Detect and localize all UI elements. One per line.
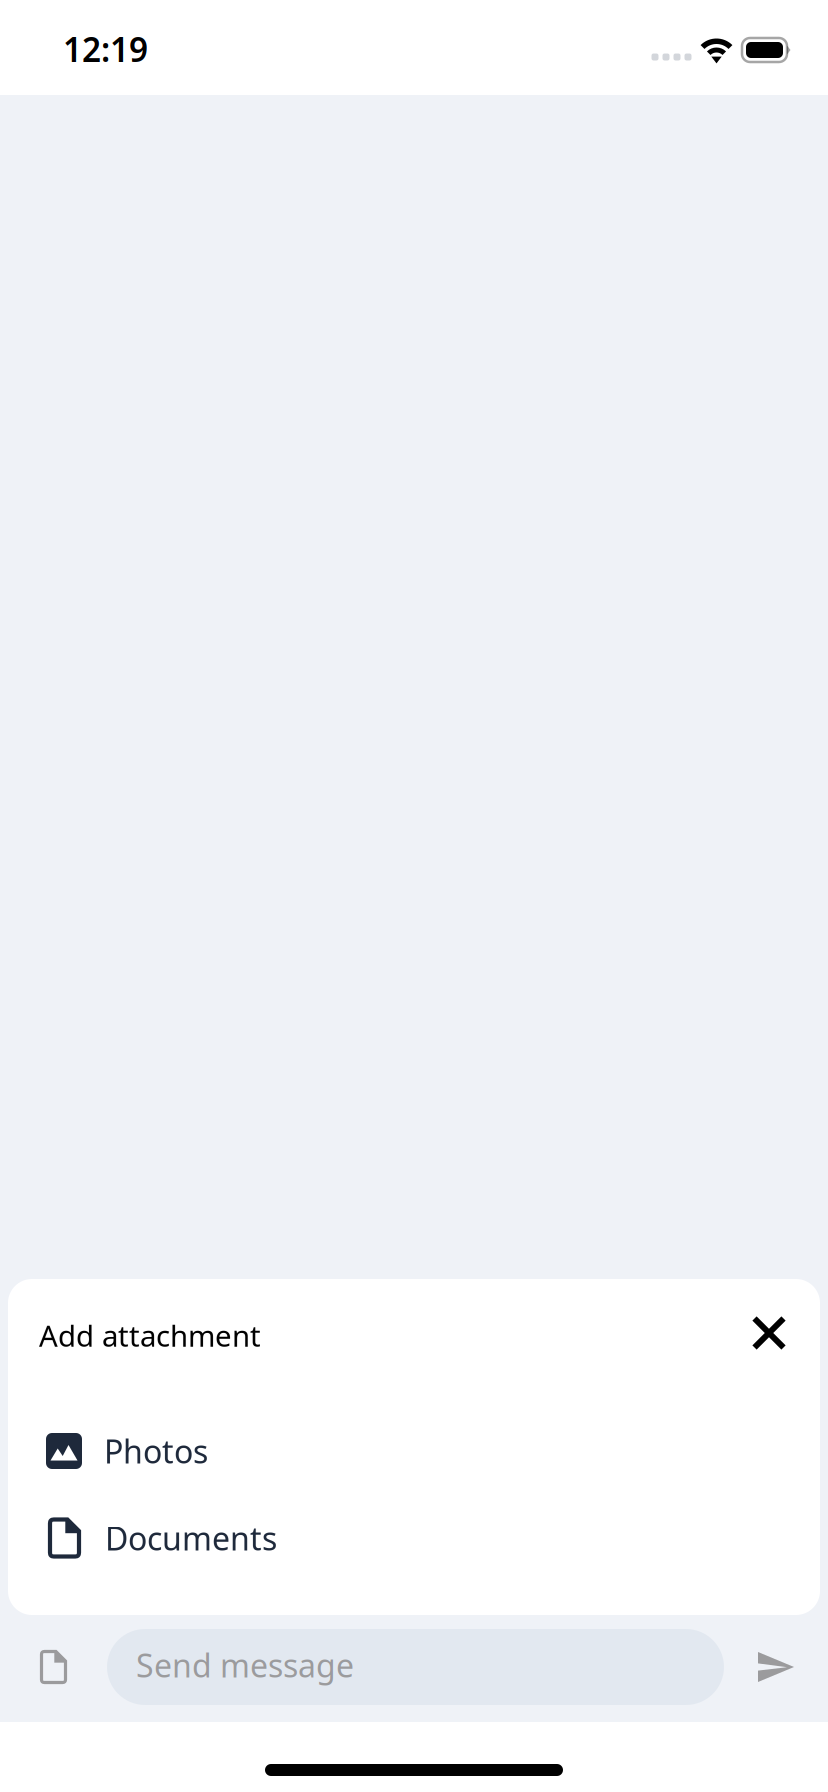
- button[interactable]: Send message: [107, 1629, 724, 1705]
- staticText: Send message: [136, 1644, 354, 1686]
- button[interactable]: Send: [724, 1629, 828, 1705]
- staticText: Add attachment: [39, 1316, 261, 1355]
- staticText: Photos: [104, 1430, 208, 1472]
- button[interactable]: Photos: [8, 1419, 820, 1483]
- button[interactable]: Documents: [8, 1506, 820, 1570]
- staticText: Documents: [105, 1517, 277, 1559]
- button[interactable]: Close: [735, 1299, 803, 1367]
- button[interactable]: Attach file: [0, 1629, 107, 1705]
- staticText: 12:19: [63, 27, 148, 71]
